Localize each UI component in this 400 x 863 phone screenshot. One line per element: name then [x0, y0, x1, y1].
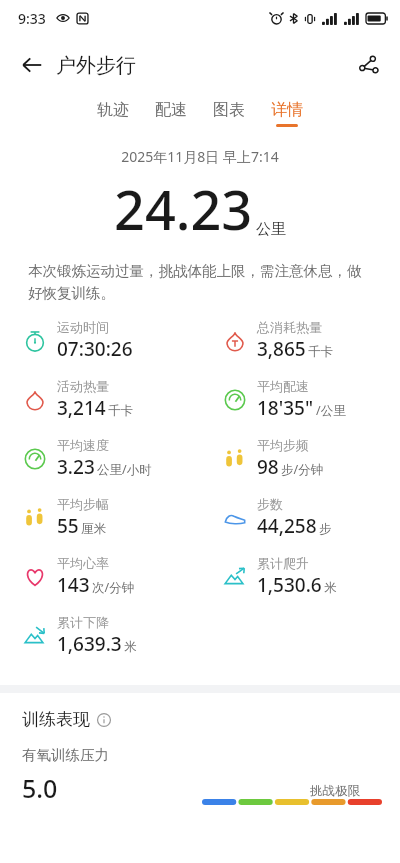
staticText: 55 — [57, 513, 79, 539]
button[interactable]: 平均速度 — [0, 435, 200, 482]
button[interactable]: 配速 — [142, 94, 200, 133]
staticText: 9:33 — [18, 9, 46, 28]
button[interactable]: 详情 — [258, 94, 316, 133]
staticText: 143 — [57, 572, 90, 598]
staticText: 运动时间 — [57, 319, 109, 335]
staticText: 训练表现 — [22, 709, 90, 730]
button[interactable]: 平均步幅 — [0, 494, 200, 541]
staticText: 平均步频 — [257, 437, 309, 453]
button[interactable]: Back — [12, 45, 52, 85]
staticText: 3.23 — [57, 454, 95, 480]
staticText: 98 — [257, 454, 279, 480]
button[interactable]: 累计下降 — [0, 612, 200, 659]
staticText: 轨迹 — [97, 100, 129, 120]
button[interactable]: 总消耗热量 — [200, 317, 400, 364]
button[interactable]: 活动热量 — [0, 376, 200, 423]
staticText: 步数 — [257, 496, 283, 512]
staticText: 公里/小时 — [97, 461, 152, 478]
staticText: 平均步幅 — [57, 496, 109, 512]
staticText: 步 — [319, 521, 332, 537]
staticText: 2025年11月8日 早上7:14 — [0, 147, 400, 166]
staticText: 次/分钟 — [92, 579, 135, 596]
staticText: 累计下降 — [57, 614, 109, 630]
staticText: 公里 — [256, 220, 286, 239]
staticText: 平均心率 — [57, 555, 109, 571]
staticText: 平均速度 — [57, 437, 109, 453]
staticText: 3,865 — [257, 336, 306, 362]
button[interactable]: 运动时间 — [0, 317, 200, 364]
staticText: 5.0 — [22, 771, 58, 805]
staticText: 米 — [124, 639, 137, 655]
staticText: /公里 — [316, 402, 346, 419]
button[interactable]: Share — [348, 45, 388, 85]
staticText: 1,639.3 — [57, 631, 122, 657]
staticText: 图表 — [213, 100, 245, 120]
staticText: 3,214 — [57, 395, 106, 421]
staticText: 44,258 — [257, 513, 317, 539]
staticText: 千卡 — [308, 344, 333, 360]
staticText: 米 — [324, 580, 337, 596]
button[interactable]: 平均步频 — [200, 435, 400, 482]
staticText: 07:30:26 — [57, 336, 133, 362]
staticText: 平均配速 — [257, 378, 309, 394]
staticText: 有氧训练压力 — [22, 746, 109, 764]
staticText: 本次锻炼运动过量，挑战体能上限，需注意休息，做好恢复训练。 — [28, 262, 372, 303]
staticText: 1,530.6 — [257, 572, 322, 598]
button[interactable]: 步数 — [200, 494, 400, 541]
staticText: 详情 — [271, 100, 303, 120]
button[interactable]: Info — [95, 711, 113, 729]
button[interactable]: 图表 — [200, 94, 258, 133]
staticText: 24.23 — [114, 172, 253, 246]
staticText: 千卡 — [108, 403, 133, 419]
staticText: 户外步行 — [56, 53, 136, 78]
staticText: 18'35" — [257, 395, 314, 421]
staticText: 活动热量 — [57, 378, 109, 394]
staticText: 厘米 — [81, 521, 106, 537]
button[interactable]: 累计爬升 — [200, 553, 400, 600]
button[interactable]: 平均配速 — [200, 376, 400, 423]
staticText: 累计爬升 — [257, 555, 309, 571]
staticText: 挑战极限 — [310, 783, 360, 799]
staticText: 步/分钟 — [281, 461, 324, 478]
staticText: 配速 — [155, 100, 187, 120]
button[interactable]: 平均心率 — [0, 553, 200, 600]
staticText: 总消耗热量 — [257, 319, 322, 335]
button[interactable]: 轨迹 — [84, 94, 142, 133]
